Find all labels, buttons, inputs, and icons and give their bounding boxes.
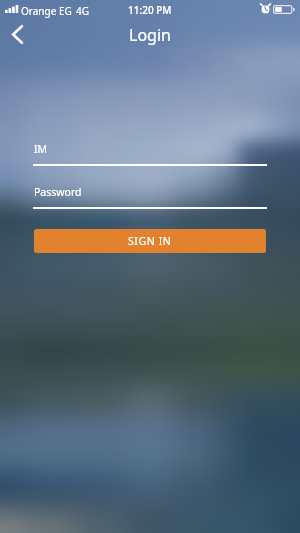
- staticText: SIGN IN: [128, 234, 172, 248]
- staticText: 4G: [76, 4, 89, 18]
- staticText: 11:20 PM: [128, 3, 172, 17]
- staticText: Orange EG: [21, 4, 72, 18]
- button[interactable]: Password: [33, 181, 267, 209]
- staticText: Login: [129, 24, 171, 46]
- button[interactable]: Back: [0, 17, 34, 51]
- staticText: Password: [34, 185, 82, 199]
- button[interactable]: SIGN IN: [34, 229, 266, 253]
- button[interactable]: IM: [33, 138, 267, 166]
- staticText: IM: [34, 142, 48, 156]
